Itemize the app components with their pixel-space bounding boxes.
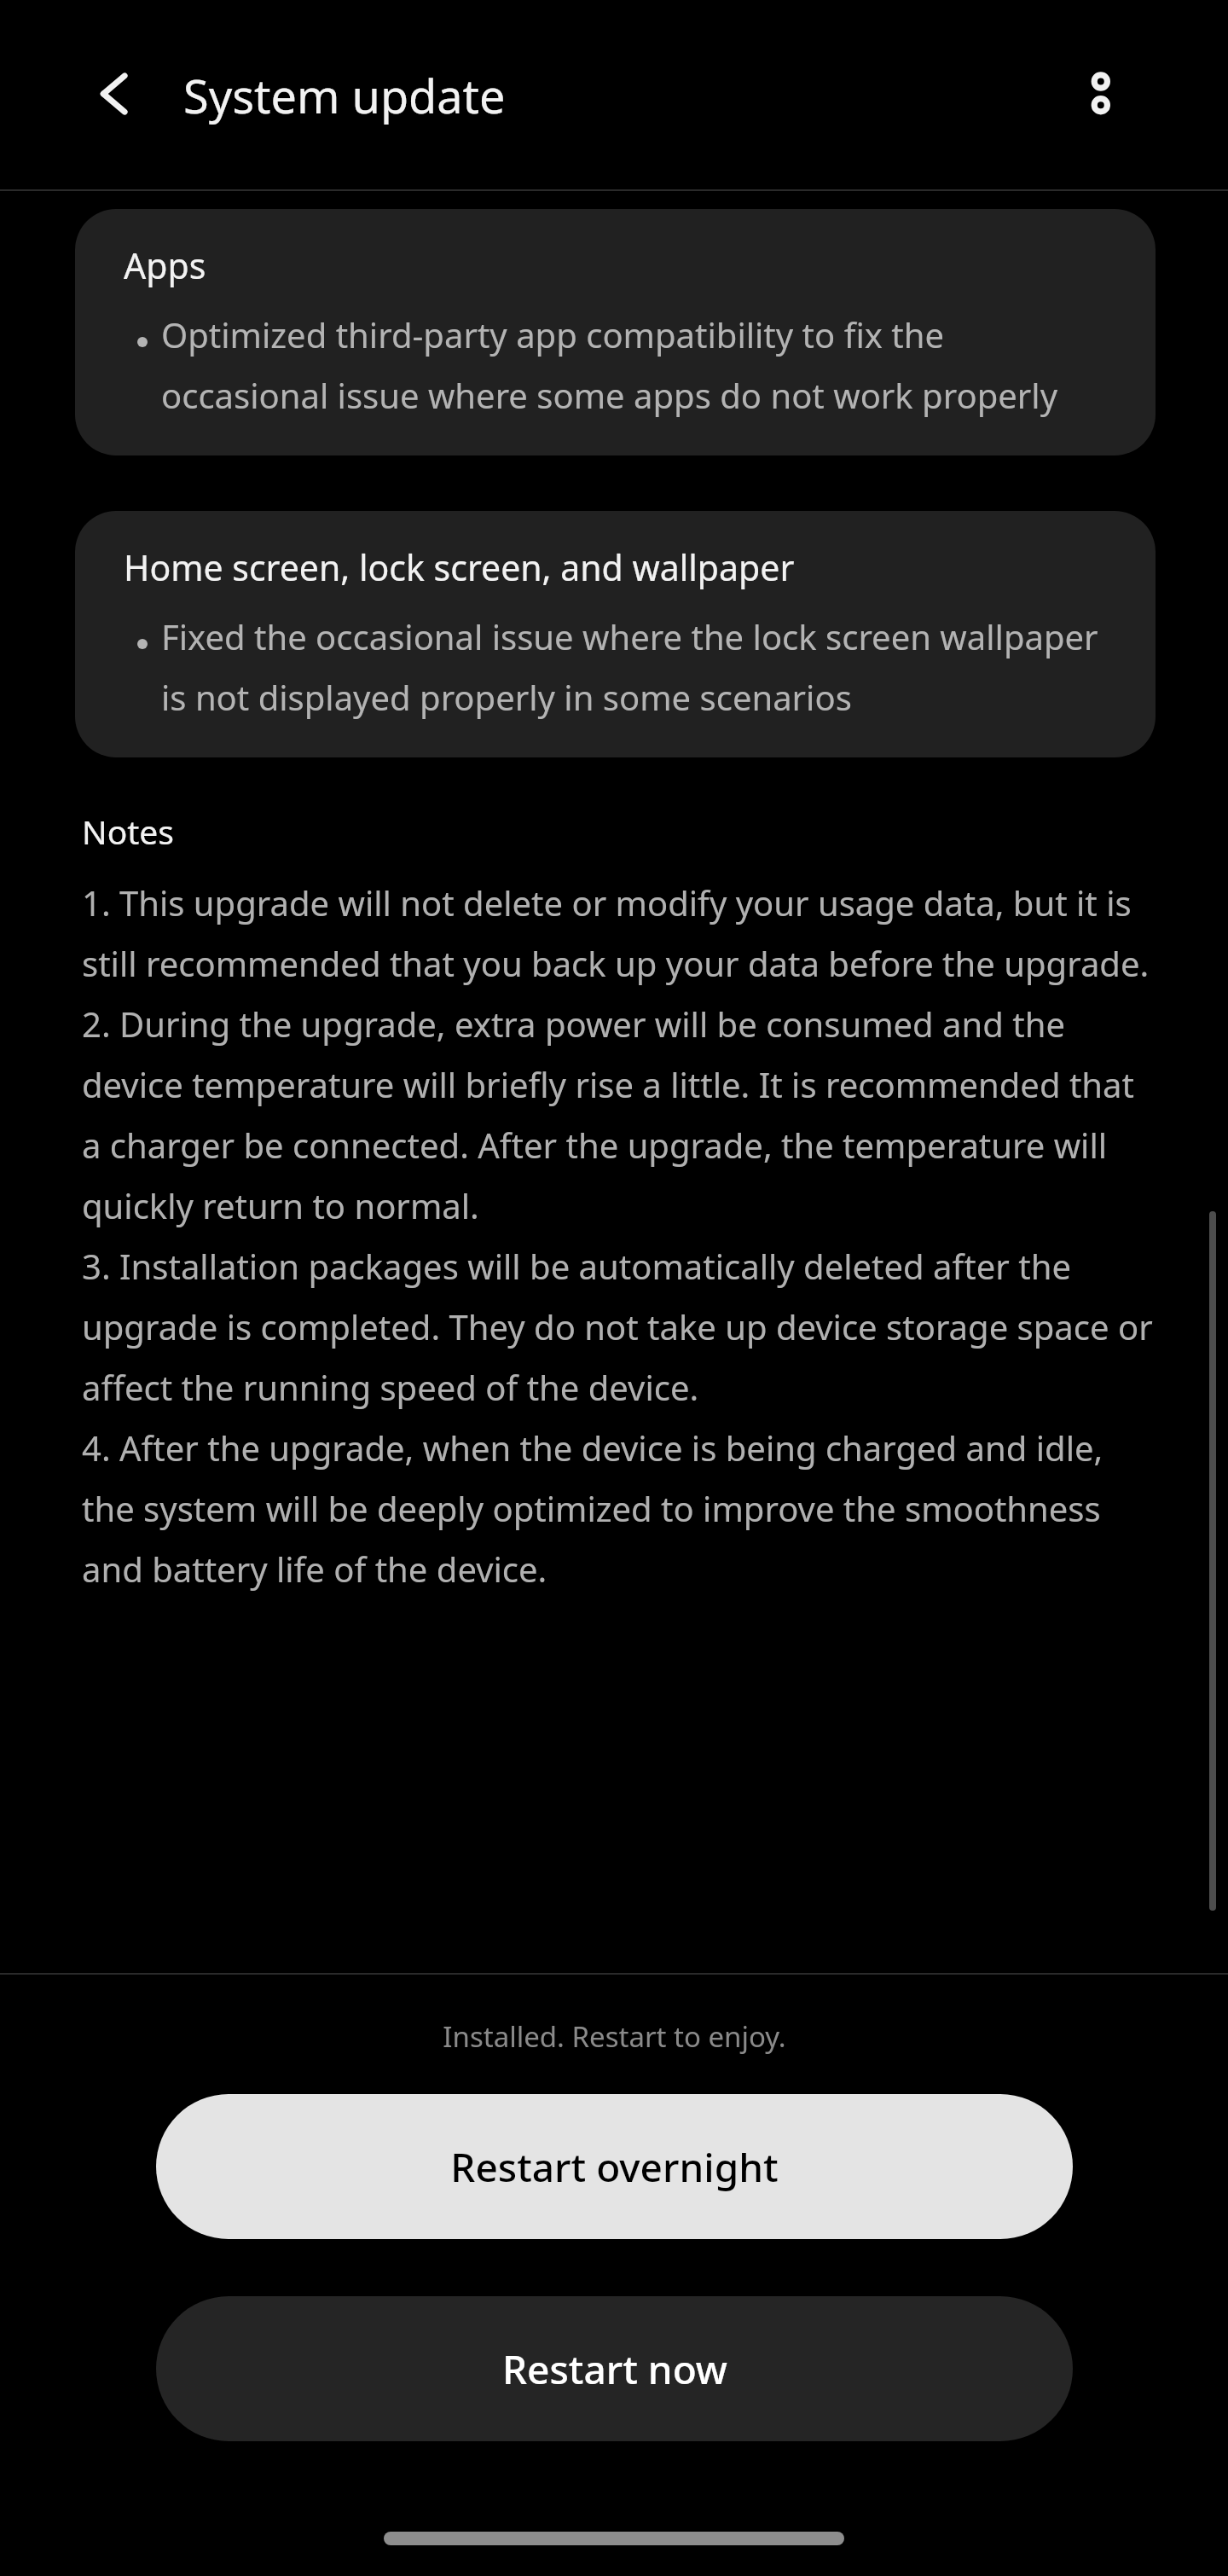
button[interactable]: Restart overnight — [156, 2094, 1073, 2239]
staticText: Fixed the occasional issue where the loc… — [161, 613, 1118, 720]
staticText: Notes — [82, 809, 174, 854]
staticText: 1. This upgrade will not delete or modif… — [82, 879, 1160, 1592]
staticText: System update — [183, 64, 506, 127]
button[interactable]: Navigate up — [73, 51, 159, 136]
staticText: Apps — [124, 241, 206, 289]
staticText: Optimized third-party app compatibility … — [161, 311, 1118, 418]
staticText: Home screen, lock screen, and wallpaper — [124, 543, 795, 591]
staticText: Restart overnight — [450, 2140, 779, 2194]
button[interactable]: Home screen, lock screen, and wallpaper — [75, 511, 1156, 757]
button[interactable]: Apps — [75, 209, 1156, 455]
staticText: Restart now — [502, 2342, 727, 2396]
button[interactable]: More options — [1068, 49, 1156, 138]
button[interactable]: Restart now — [156, 2296, 1073, 2441]
staticText: Installed. Restart to enjoy. — [443, 2017, 786, 2056]
